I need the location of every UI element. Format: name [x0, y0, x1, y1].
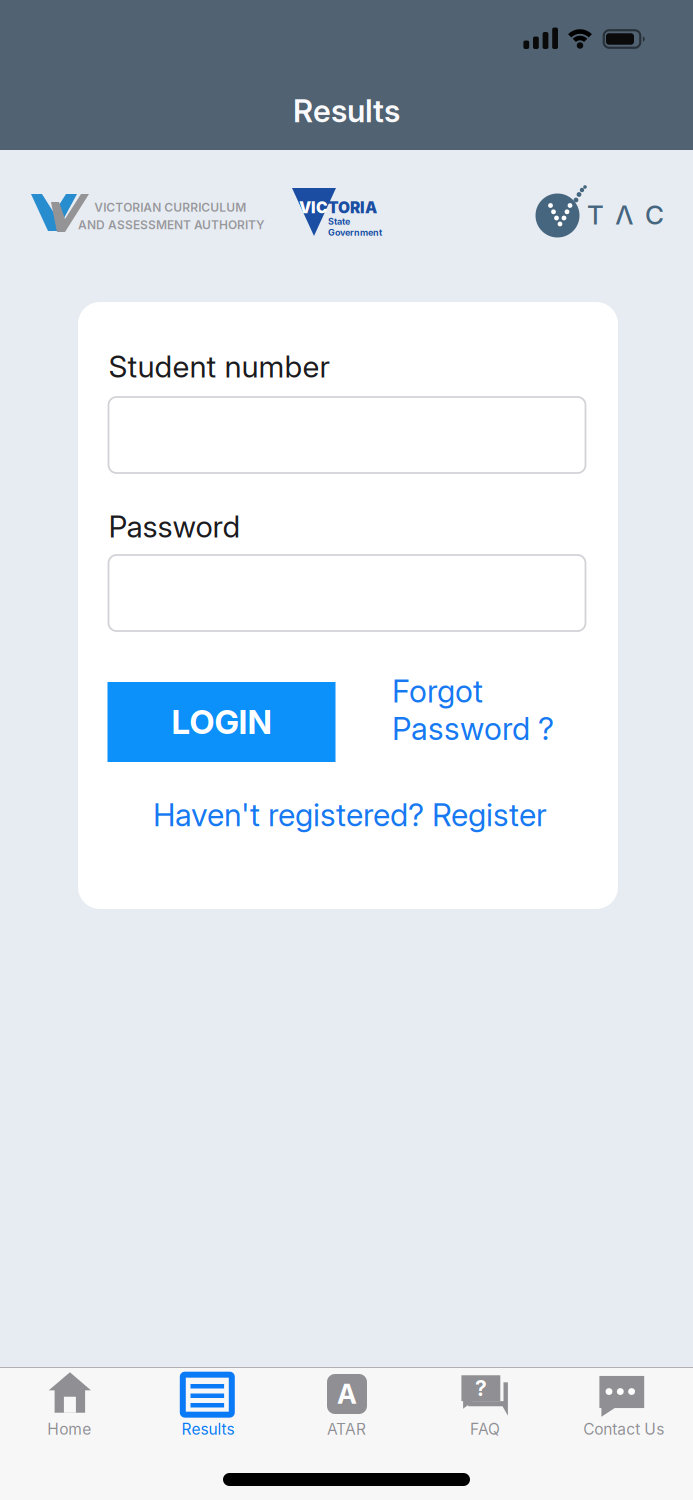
staticText: T [587, 199, 604, 231]
staticText: LOGIN [171, 702, 271, 742]
staticText: Haven't registered? Register [153, 796, 547, 834]
staticText: AND ASSESSMENT AUTHORITY [78, 218, 265, 232]
button[interactable]: A [277, 1367, 416, 1455]
staticText: C [645, 199, 664, 231]
staticText: Results [181, 1420, 234, 1438]
button[interactable]: Forgot [392, 672, 554, 747]
staticText: VICTORIAN CURRICULUM [94, 200, 246, 215]
staticText: Student number [108, 348, 330, 385]
staticText: Password [108, 508, 240, 545]
staticText: Government [328, 227, 382, 238]
staticText: VIC [299, 198, 328, 217]
staticText: A [337, 1378, 357, 1410]
button[interactable]: Contact Us [554, 1367, 693, 1455]
staticText: Forgot [392, 672, 483, 710]
staticText: Password ? [392, 710, 554, 747]
staticText: ? [475, 1375, 487, 1401]
staticText: FAQ [470, 1420, 500, 1438]
staticText: Results [293, 92, 400, 130]
staticText: Contact Us [583, 1420, 664, 1438]
staticText: ATAR [327, 1420, 366, 1438]
staticText: State [328, 216, 350, 227]
staticText: Home [47, 1420, 91, 1438]
button[interactable]: Home [0, 1367, 139, 1455]
button[interactable]: Results [139, 1367, 277, 1455]
button[interactable]: Haven't registered? Register [153, 796, 547, 834]
staticText: TORIA [328, 198, 377, 217]
staticText: Λ [615, 199, 633, 231]
button[interactable]: LOGIN [107, 682, 335, 762]
button[interactable]: ? [416, 1367, 554, 1455]
